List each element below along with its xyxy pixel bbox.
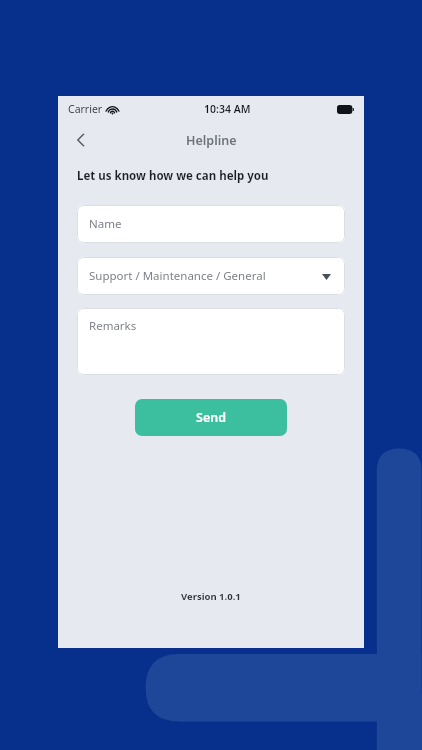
staticText: Name [89,216,122,232]
staticText: 10:34 AM [204,102,251,116]
other: Open dropdown [317,267,335,285]
button[interactable]: Send [135,399,287,436]
button[interactable]: Name [77,205,345,243]
staticText: Remarks [89,318,137,334]
staticText: Support / Maintenance / General [89,268,266,284]
staticText: Send [196,409,226,426]
staticText: Let us know how we can help you [77,168,269,184]
button[interactable]: Remarks [77,308,345,375]
button[interactable]: Back [64,123,98,157]
button[interactable]: Support / Maintenance / General [77,257,345,295]
staticText: Helpline [186,132,237,149]
staticText: Carrier [68,102,103,116]
staticText: Version 1.0.1 [181,590,241,603]
